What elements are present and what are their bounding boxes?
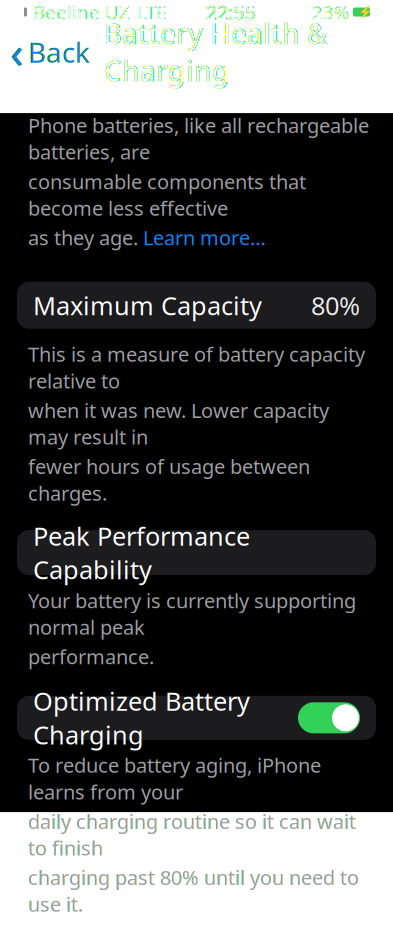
button[interactable]: Peak Performance Capability	[17, 530, 376, 575]
staticText: ⚡	[358, 5, 373, 19]
staticText: LTE	[137, 0, 166, 24]
staticText: Maximum Capacity	[33, 288, 262, 322]
staticText: consumable components that become less e…	[28, 168, 306, 221]
staticText: Beeline UZ	[33, 0, 130, 24]
button[interactable]: ‹	[0, 20, 90, 84]
staticText: Phone batteries, like all rechargeable b…	[28, 112, 369, 165]
staticText: ‹	[10, 24, 24, 80]
staticText: daily charging routine so it can wait to…	[28, 808, 356, 861]
button[interactable]: Optimized Battery Charging	[17, 696, 376, 740]
staticText: 23%	[312, 0, 350, 24]
staticText: 80%	[311, 288, 360, 322]
staticText: as they age.	[28, 224, 143, 251]
staticText: Your battery is currently supporting nor…	[28, 587, 356, 640]
staticText: charging past 80% until you need to use …	[28, 864, 359, 917]
staticText: To reduce battery aging, iPhone learns f…	[28, 752, 321, 805]
button[interactable]: Maximum Capacity	[17, 282, 376, 329]
staticText: fewer hours of usage between charges.	[28, 453, 310, 506]
staticText: This is a measure of battery capacity re…	[28, 341, 365, 394]
staticText: when it was new. Lower capacity may resu…	[28, 397, 329, 450]
staticText: Back	[28, 33, 90, 71]
staticText: Battery Health & Charging	[104, 15, 328, 89]
staticText: performance.	[28, 643, 154, 670]
staticText: Learn more…	[143, 224, 266, 251]
staticText: Optimized Battery Charging	[33, 684, 250, 751]
button[interactable]: Learn more…	[143, 224, 266, 251]
staticText: 22:55	[205, 0, 255, 25]
staticText: Peak Performance Capability	[33, 519, 250, 586]
